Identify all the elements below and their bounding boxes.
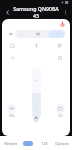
- button[interactable]: 123: [36, 136, 53, 150]
- button[interactable]: Forward: [49, 30, 65, 38]
- staticText: CH: [58, 114, 63, 118]
- staticText: 123: [41, 141, 48, 146]
- button[interactable]: Input: [32, 41, 41, 50]
- button[interactable]: Volume up: [32, 67, 41, 93]
- button[interactable]: Rewind: [15, 30, 27, 38]
- staticText: Options: [55, 141, 69, 146]
- staticText: VOL: [9, 114, 15, 118]
- button[interactable]: Volume down: [32, 93, 41, 119]
- button[interactable]: CH: [56, 104, 65, 118]
- staticText: Remote: [4, 141, 18, 146]
- button[interactable]: Menu: [55, 41, 64, 50]
- button[interactable]: Home: [8, 41, 17, 50]
- button[interactable]: Touchpad: [31, 114, 41, 124]
- button[interactable]: Back: [8, 53, 17, 62]
- button[interactable]: More options: [60, 7, 70, 17]
- button[interactable]: Back: [2, 7, 12, 17]
- button[interactable]: Remote: [2, 136, 19, 150]
- button[interactable]: Keypad: [19, 136, 36, 150]
- button[interactable]: VOL: [7, 104, 16, 118]
- button[interactable]: Power: [59, 21, 66, 28]
- button[interactable]: Play Pause: [27, 30, 49, 38]
- button[interactable]: Options: [53, 136, 70, 150]
- button[interactable]: Mute: [7, 30, 14, 37]
- staticText: Samsung QN90BA 43: [12, 5, 60, 18]
- button[interactable]: Guide: [55, 53, 64, 62]
